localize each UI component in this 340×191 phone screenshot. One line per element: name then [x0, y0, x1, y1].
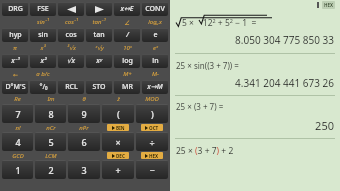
staticText: (	[117, 108, 120, 120]
staticText: 1	[15, 164, 21, 176]
staticText: DEC	[116, 153, 125, 159]
button[interactable]: x⁻¹	[2, 54, 28, 68]
button[interactable]: CONV	[142, 2, 168, 16]
staticText: cos⁻¹	[65, 18, 78, 26]
staticText: 5	[48, 136, 54, 148]
button[interactable]: 6	[68, 132, 100, 151]
staticText: n!	[15, 124, 21, 132]
staticText: Re	[14, 95, 21, 103]
button[interactable]: xʸ	[86, 54, 112, 68]
button[interactable]: OCT	[141, 124, 163, 131]
staticText: nCr	[46, 124, 56, 132]
button[interactable]: HEX	[141, 152, 163, 159]
staticText: GCD	[12, 152, 24, 160]
button[interactable]: x→M	[142, 80, 168, 94]
button[interactable]: √x	[58, 54, 84, 68]
button[interactable]: Right	[86, 2, 112, 16]
button[interactable]: 9	[68, 104, 100, 123]
button[interactable]: x²	[30, 54, 56, 68]
staticText: LCM	[45, 152, 57, 160]
staticText: ³√x	[67, 44, 76, 52]
staticText: eˣ	[153, 44, 158, 52]
staticText: MR	[122, 82, 133, 92]
staticText: DRG	[8, 4, 23, 14]
staticText: hyp	[9, 30, 22, 40]
staticText: STO	[92, 82, 106, 92]
staticText: OCT	[149, 125, 159, 131]
staticText: )	[151, 108, 154, 120]
staticText: log	[122, 56, 133, 66]
button[interactable]: 8	[35, 104, 66, 123]
staticText: 4.341 204 441 673 26	[170, 76, 334, 90]
button[interactable]: ln	[142, 54, 168, 68]
staticText: /	[126, 30, 129, 40]
button[interactable]: STO	[86, 80, 112, 94]
button[interactable]: °/₀	[30, 80, 56, 94]
staticText: 250	[170, 118, 334, 133]
staticText: ÷	[149, 136, 155, 148]
button[interactable]: 2	[35, 160, 66, 179]
staticText: x³	[40, 44, 46, 52]
button[interactable]: 3	[68, 160, 100, 179]
staticText: √x	[67, 56, 75, 66]
button[interactable]: ×	[102, 132, 134, 151]
staticText: 8	[48, 108, 54, 120]
staticText: ×	[115, 136, 121, 148]
button[interactable]: D°M'S	[2, 80, 28, 94]
button[interactable]: tan	[86, 28, 112, 42]
staticText: ˣ√y	[95, 44, 104, 52]
button[interactable]: ÷	[136, 132, 168, 151]
button[interactable]: 7	[2, 104, 33, 123]
button[interactable]: )	[136, 104, 168, 123]
staticText: D°M'S	[5, 82, 26, 92]
button[interactable]: 5	[35, 132, 66, 151]
staticText: cos	[65, 30, 77, 40]
button[interactable]: x↔E	[114, 2, 140, 16]
button[interactable]: +	[102, 160, 134, 179]
staticText: 7	[15, 108, 21, 120]
staticText: 25 × (3 + 7) =	[176, 101, 340, 112]
staticText: x→M	[147, 82, 163, 92]
staticText: CONV	[145, 4, 165, 14]
staticText: x²	[40, 56, 47, 66]
staticText: 3	[81, 164, 87, 176]
button[interactable]: BIN	[107, 124, 129, 131]
staticText: z̄	[117, 95, 120, 103]
button[interactable]: DEC	[107, 152, 129, 159]
button[interactable]: Left	[58, 2, 84, 16]
staticText: 4	[15, 136, 21, 148]
button[interactable]: FSE	[30, 2, 56, 16]
button[interactable]: (	[102, 104, 134, 123]
staticText: e	[153, 30, 158, 40]
staticText: 8.050 304 775 850 33	[170, 33, 334, 47]
staticText: −	[149, 164, 155, 176]
staticText: HEX	[324, 2, 333, 8]
button[interactable]: /	[114, 28, 140, 42]
staticText: MOD	[145, 95, 159, 103]
staticText: +	[115, 164, 121, 176]
staticText: nPr	[79, 124, 89, 132]
staticText: θ	[82, 95, 86, 103]
staticText: 25 × (3 + 7) + 2	[176, 145, 340, 157]
button[interactable]: hyp	[2, 28, 28, 42]
staticText: ∠	[124, 19, 130, 26]
staticText: xʸ	[96, 56, 102, 66]
staticText: tan⁻¹	[92, 18, 106, 26]
button[interactable]: DRG	[2, 2, 28, 16]
staticText: 10ˣ	[123, 44, 132, 52]
staticText: sin	[38, 30, 48, 40]
button[interactable]: RCL	[58, 80, 84, 94]
button[interactable]: MR	[114, 80, 140, 94]
button[interactable]: cos	[58, 28, 84, 42]
button[interactable]: e	[142, 28, 168, 42]
button[interactable]: −	[136, 160, 168, 179]
button[interactable]: log	[114, 54, 140, 68]
staticText: ln	[152, 56, 159, 66]
staticText: x⁻¹	[11, 56, 20, 66]
button[interactable]: sin	[30, 28, 56, 42]
button[interactable]: 1	[2, 160, 33, 179]
staticText: BIN	[116, 125, 125, 131]
staticText: 25 × sin((3 + 7)) =	[176, 60, 340, 71]
staticText: a b/c	[36, 70, 50, 78]
button[interactable]: 4	[2, 132, 33, 151]
